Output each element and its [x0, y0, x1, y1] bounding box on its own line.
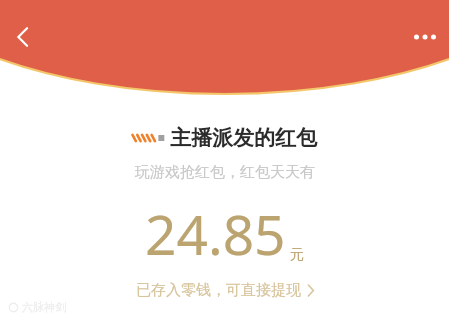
- staticText: 玩游戏抢红包，红包天天有: [135, 163, 315, 182]
- button[interactable]: More options: [405, 17, 445, 57]
- staticText: 主播派发的红包: [170, 125, 317, 151]
- staticText: 已存入零钱，可直接提现: [136, 281, 301, 300]
- button[interactable]: 已存入零钱，可直接提现: [128, 277, 322, 304]
- button[interactable]: Back: [2, 17, 42, 57]
- staticText: 六脉神剑: [22, 300, 66, 314]
- staticText: 元: [290, 246, 304, 264]
- staticText: 24.85: [145, 196, 286, 271]
